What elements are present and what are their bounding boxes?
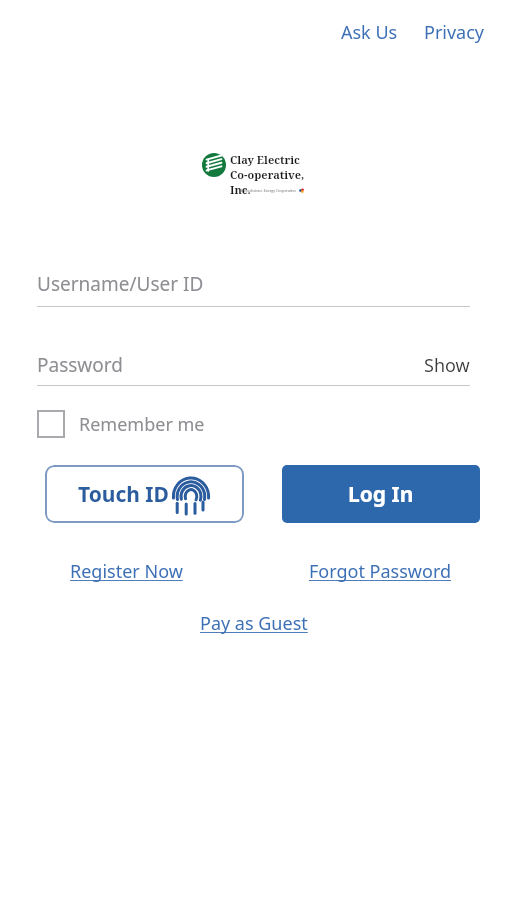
staticText: Touch ID	[78, 480, 169, 509]
button[interactable]: Ask Us	[337, 16, 402, 49]
button[interactable]: Log In	[282, 465, 480, 523]
button[interactable]: Username/User ID	[37, 262, 470, 306]
staticText: Co-operative, Inc.	[230, 167, 306, 194]
button[interactable]: Touch ID	[45, 465, 244, 523]
button[interactable]: Remember me	[37, 407, 205, 441]
staticText: A Touchstone Energy Cooperative	[240, 188, 297, 193]
button[interactable]: Show	[416, 353, 470, 378]
button[interactable]: Register Now	[64, 554, 189, 589]
staticText: Ask Us	[341, 20, 398, 45]
staticText: Username/User ID	[37, 271, 204, 297]
staticText: Pay as Guest	[200, 611, 308, 636]
staticText: Privacy	[424, 20, 485, 45]
staticText: Show	[424, 353, 470, 378]
staticText: Log In	[348, 480, 414, 509]
staticText: Remember me	[79, 412, 205, 437]
staticText: Clay Electric	[230, 152, 300, 167]
staticText: Forgot Password	[309, 559, 452, 584]
button[interactable]: Pay as Guest	[194, 606, 314, 641]
button[interactable]: Password	[37, 345, 416, 385]
staticText: Register Now	[70, 559, 183, 584]
staticText: Password	[37, 352, 123, 378]
button[interactable]: Privacy	[420, 16, 489, 49]
button[interactable]: Forgot Password	[303, 554, 458, 589]
other: Fingerprint	[171, 474, 211, 514]
